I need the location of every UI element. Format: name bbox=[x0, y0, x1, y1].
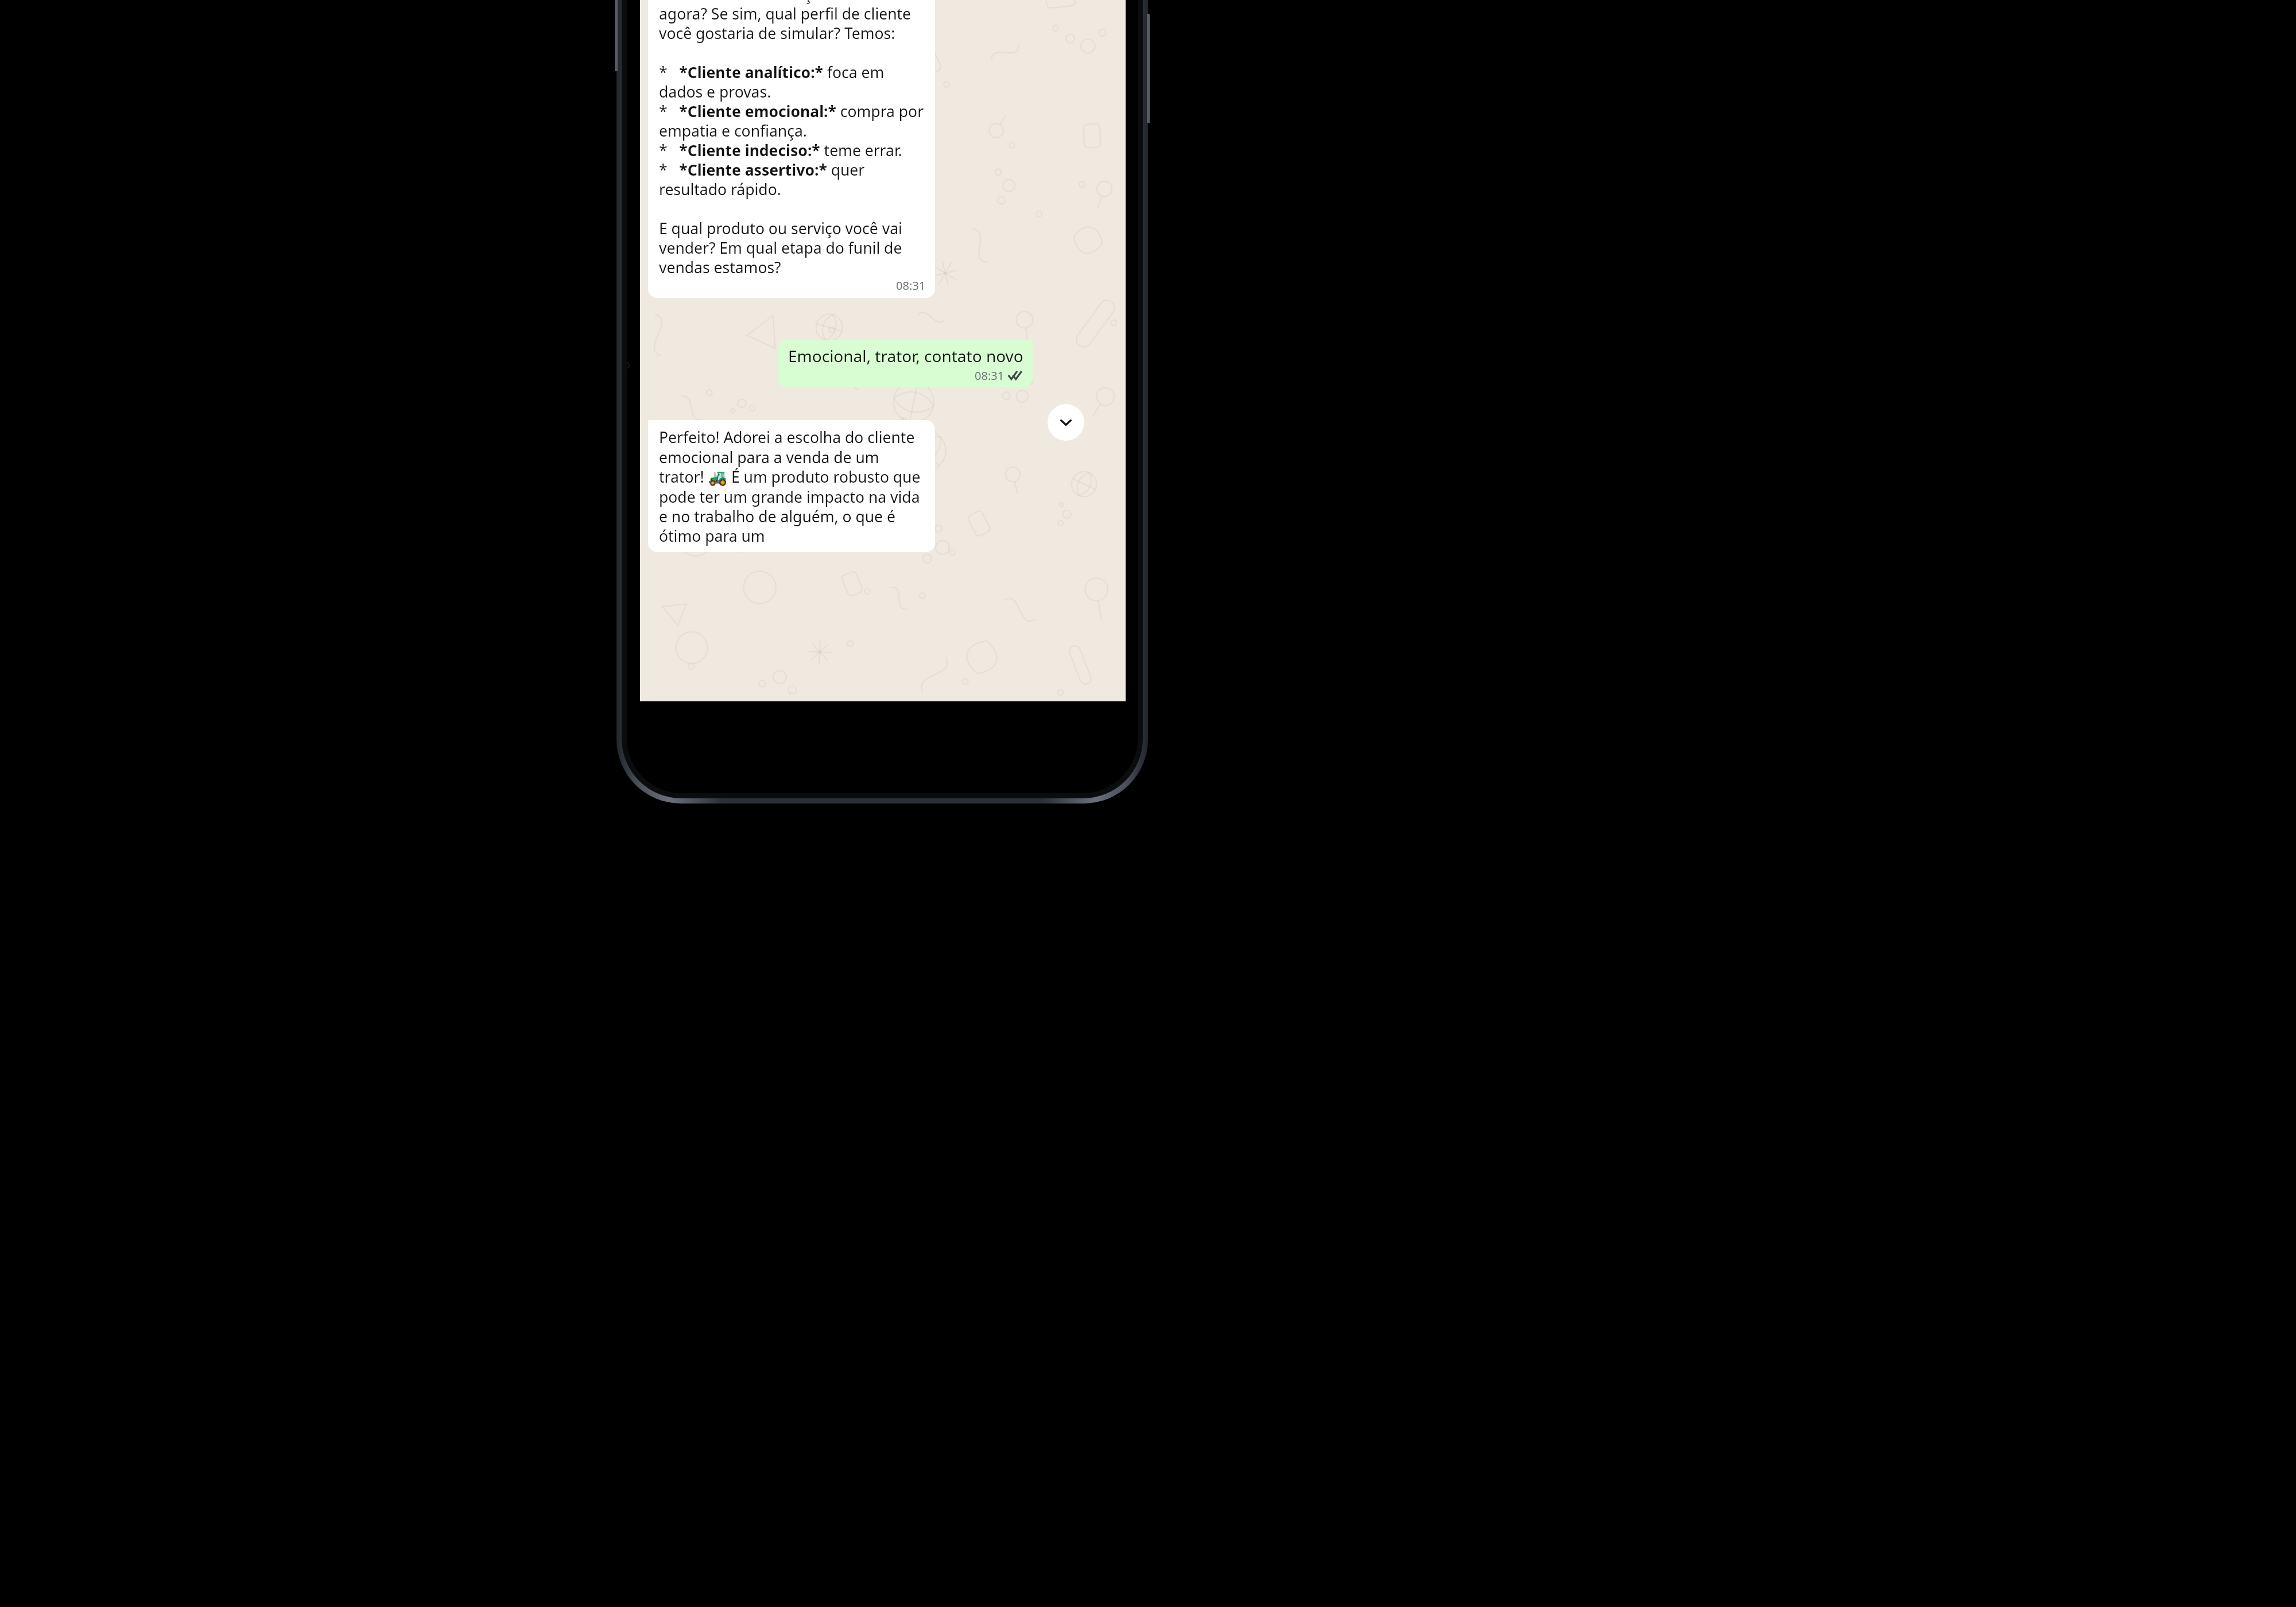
staticText: Perfeito! Adorei a escolha do cliente em… bbox=[659, 427, 926, 546]
staticText: 08:31 bbox=[975, 368, 1004, 383]
button[interactable]: Emocional, trator, contato novo bbox=[778, 340, 1033, 387]
staticText: 08:31 bbox=[896, 278, 926, 293]
staticText: Olá! Que ótimo ter você por aqui! 👋 Vamo… bbox=[659, 0, 926, 278]
staticText: Emocional, trator, contato novo bbox=[788, 345, 1023, 367]
button[interactable]: Olá! Que ótimo ter você por aqui! 👋 Vamo… bbox=[648, 0, 935, 298]
button[interactable]: Scroll to bottom bbox=[1048, 404, 1084, 441]
button[interactable]: Perfeito! Adorei a escolha do cliente em… bbox=[648, 420, 935, 552]
